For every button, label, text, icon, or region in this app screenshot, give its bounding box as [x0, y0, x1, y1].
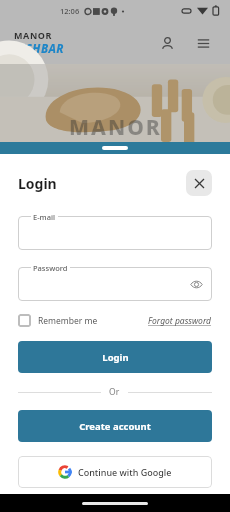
staticText: Login — [102, 351, 129, 364]
button[interactable]: Menu — [190, 30, 216, 56]
button[interactable] — [18, 267, 212, 301]
staticText: MANOR — [14, 29, 53, 41]
staticText: Remember me — [38, 315, 98, 327]
staticText: Or — [109, 386, 120, 398]
staticText: 12:06 — [60, 6, 80, 16]
button[interactable] — [18, 216, 212, 250]
button[interactable]: Forgot password — [148, 315, 212, 327]
staticText: E-mail — [33, 212, 56, 222]
button[interactable]: Close — [186, 170, 212, 196]
button[interactable]: Login — [18, 341, 212, 373]
staticText: Login — [18, 174, 57, 193]
staticText: Password — [33, 263, 68, 273]
staticText: Continue with Google — [78, 466, 172, 478]
staticText: Create account — [79, 420, 151, 433]
staticText: MANOR — [69, 113, 162, 142]
button[interactable]: Show password — [188, 276, 204, 292]
button[interactable]: Continue with Google — [18, 456, 212, 488]
staticText: FISHBAR — [14, 41, 65, 57]
button[interactable]: Account — [154, 30, 180, 56]
button[interactable]: Create account — [18, 410, 212, 442]
button[interactable]: Remember me — [18, 314, 98, 327]
